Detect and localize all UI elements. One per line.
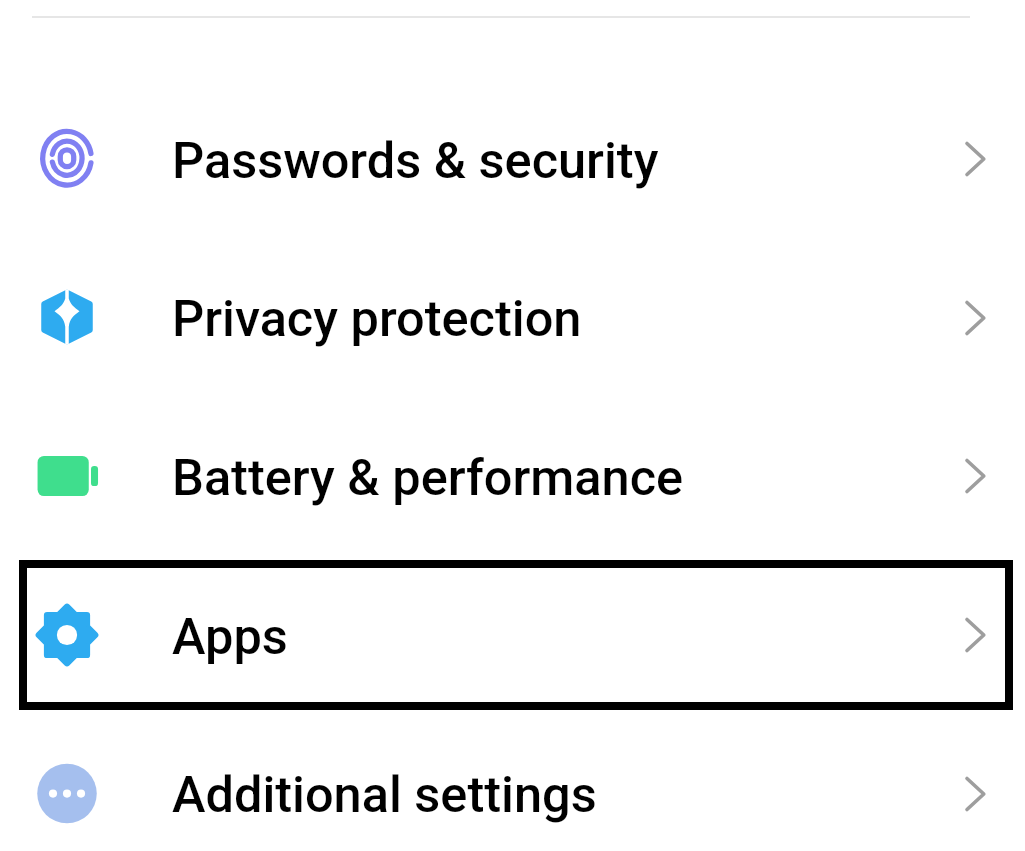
other: Open Apps [960,610,990,660]
button[interactable]: Additional settings [19,718,1013,851]
staticText: Passwords & security [172,131,659,190]
staticText: Battery & performance [172,448,684,507]
staticText: Privacy protection [172,289,582,348]
other: Open Privacy protection [960,293,990,343]
button[interactable]: Battery & performance [19,401,1013,551]
button[interactable]: Passwords & security [19,84,1013,234]
staticText: Additional settings [172,765,597,824]
staticText: Apps [172,607,288,666]
button[interactable]: Apps [19,560,1013,710]
other: Open Passwords & security [960,134,990,184]
button[interactable]: Privacy protection [19,242,1013,392]
other: Open Battery & performance [960,451,990,501]
other: Open Additional settings [960,769,990,819]
